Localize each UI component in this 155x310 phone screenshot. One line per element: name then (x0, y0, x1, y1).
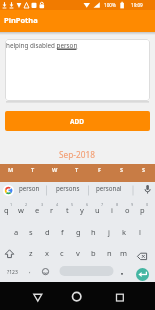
button[interactable]: , (26, 265, 34, 277)
button[interactable]: y (75, 204, 89, 216)
button[interactable]: c (55, 247, 69, 259)
button[interactable]: i (105, 204, 119, 216)
staticText: 19:09 (131, 2, 143, 8)
button[interactable]: person (12, 182, 46, 194)
staticText: r (50, 205, 54, 215)
staticText: t (66, 205, 69, 215)
staticText: g (76, 227, 81, 237)
button[interactable]: t (60, 204, 74, 216)
staticText: p (140, 205, 145, 215)
staticText: 8 (116, 202, 119, 207)
staticText: helping disabled person (6, 41, 78, 50)
button[interactable]: helping disabled person (5, 39, 150, 101)
staticText: Sep-2018 (59, 149, 95, 160)
button[interactable] (25, 284, 51, 308)
staticText: persons (56, 184, 80, 192)
button[interactable]: persons (50, 182, 86, 194)
staticText: 0 (146, 202, 149, 207)
staticText: f (61, 227, 64, 237)
button[interactable] (64, 284, 90, 308)
staticText: personal (96, 184, 122, 192)
button[interactable]: g (71, 226, 85, 238)
button[interactable]: l (133, 226, 147, 238)
button[interactable]: e (30, 204, 44, 216)
staticText: q (4, 205, 9, 215)
button[interactable]: p (135, 204, 149, 216)
staticText: l (139, 227, 141, 237)
staticText: s (29, 227, 33, 237)
staticText: 100% (104, 2, 116, 8)
button[interactable] (3, 246, 18, 261)
staticText: 5 (71, 202, 74, 207)
staticText: 1 (10, 202, 13, 207)
staticText: o (125, 205, 130, 215)
staticText: v (76, 248, 80, 258)
staticText: k (122, 227, 127, 237)
staticText: S (120, 166, 124, 173)
staticText: 4 (56, 202, 59, 207)
staticText: c (60, 248, 64, 258)
button[interactable]: h (86, 226, 100, 238)
button[interactable]: ?123 (2, 266, 22, 278)
staticText: d (45, 227, 50, 237)
button[interactable] (141, 183, 154, 196)
button[interactable]: j (102, 226, 116, 238)
button[interactable]: d (40, 226, 54, 238)
button[interactable]: a (9, 226, 23, 238)
button[interactable]: m (117, 247, 131, 259)
button[interactable]: v (71, 247, 85, 259)
button[interactable]: PinPotha (4, 14, 54, 26)
button[interactable]: u (90, 204, 104, 216)
staticText: T (31, 166, 35, 173)
staticText: e (35, 205, 40, 215)
staticText: M (8, 166, 14, 173)
staticText: ADD (70, 117, 85, 126)
button[interactable] (136, 268, 149, 281)
staticText: n (107, 248, 112, 258)
button[interactable]: x (40, 247, 54, 259)
staticText: 9 (131, 202, 134, 207)
staticText: x (45, 248, 49, 258)
button[interactable]: z (24, 247, 38, 259)
staticText: PinPotha (4, 15, 38, 25)
button[interactable]: k (117, 226, 131, 238)
staticText: u (95, 205, 100, 215)
staticText: person (19, 184, 40, 192)
staticText: , (29, 267, 31, 275)
staticText: b (91, 248, 96, 258)
staticText: 6 (86, 202, 89, 207)
button[interactable]: f (55, 226, 69, 238)
button[interactable] (107, 284, 133, 308)
staticText: j (108, 227, 110, 237)
button[interactable] (60, 266, 114, 276)
staticText: w (18, 205, 24, 215)
button[interactable] (3, 185, 14, 196)
staticText: a (14, 227, 19, 237)
button[interactable]: w (14, 204, 28, 216)
button[interactable]: ADD (5, 111, 150, 131)
button[interactable]: q (0, 204, 13, 216)
button[interactable]: personal (90, 182, 128, 194)
staticText: 2 (25, 202, 28, 207)
button[interactable]: n (102, 247, 116, 259)
staticText: z (29, 248, 33, 258)
staticText: 3 (41, 202, 44, 207)
button[interactable]: Sep-2018 (47, 148, 107, 160)
button[interactable] (136, 246, 151, 261)
staticText: S (142, 166, 146, 173)
button[interactable]: o (120, 204, 134, 216)
staticText: y (80, 205, 84, 215)
button[interactable]: b (86, 247, 100, 259)
staticText: 7 (101, 202, 104, 207)
staticText: T (75, 166, 79, 173)
button[interactable]: s (24, 226, 38, 238)
staticText: ?123 (7, 269, 18, 276)
staticText: i (111, 205, 113, 215)
staticText: F (98, 166, 102, 173)
button[interactable]: r (45, 204, 59, 216)
staticText: W (52, 166, 58, 173)
staticText: m (120, 248, 128, 258)
staticText: h (91, 227, 96, 237)
